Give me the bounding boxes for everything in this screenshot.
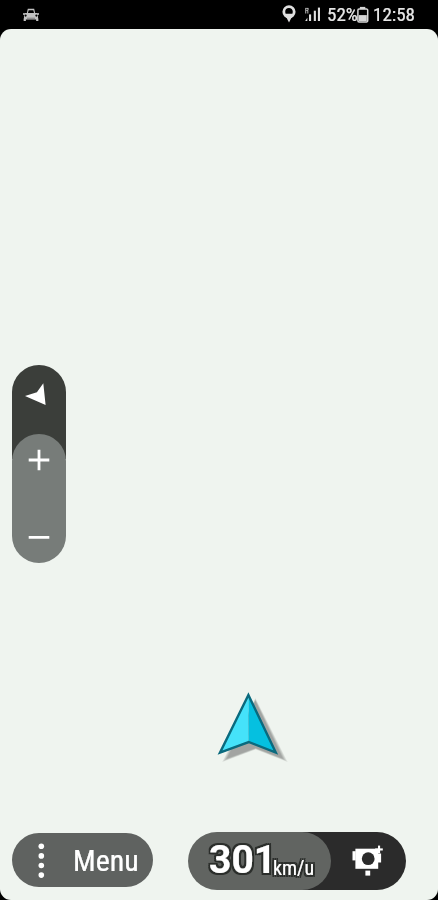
staticText: km/u bbox=[273, 854, 315, 877]
button[interactable]: Compass, map orientation bbox=[12, 365, 66, 459]
staticText: 301 bbox=[211, 837, 279, 883]
staticText: 301 bbox=[209, 837, 277, 883]
button[interactable]: 301 bbox=[188, 832, 331, 890]
staticText: km/u bbox=[275, 854, 317, 877]
staticText: km/u bbox=[271, 856, 313, 879]
button[interactable]: Menu bbox=[12, 833, 153, 887]
staticText: 301 bbox=[209, 835, 277, 881]
staticText: 12:58 bbox=[373, 3, 415, 25]
staticText: 301 bbox=[207, 835, 275, 881]
button[interactable]: Add marker bbox=[332, 832, 406, 890]
staticText: km/u bbox=[273, 856, 315, 879]
staticText: 301 bbox=[211, 839, 279, 885]
staticText: 52% bbox=[327, 3, 358, 25]
staticText: 301 bbox=[209, 839, 277, 885]
staticText: km/u bbox=[273, 858, 315, 881]
staticText: km/u bbox=[271, 854, 313, 877]
button[interactable]: Zoom in bbox=[12, 434, 66, 498]
staticText: Menu bbox=[73, 843, 139, 878]
button[interactable]: Zoom out bbox=[12, 498, 66, 563]
staticText: 301 bbox=[211, 835, 279, 881]
staticText: km/u bbox=[271, 858, 313, 881]
staticText: km/u bbox=[275, 856, 317, 879]
staticText: 301 bbox=[207, 837, 275, 883]
staticText: km/u bbox=[275, 858, 317, 881]
staticText: 301 bbox=[207, 839, 275, 885]
